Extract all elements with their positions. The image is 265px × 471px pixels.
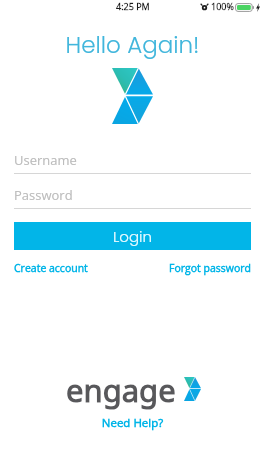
- other: Engage logo: [112, 68, 153, 124]
- button[interactable]: Login: [14, 222, 251, 250]
- button[interactable]: Password: [0, 183, 265, 209]
- staticText: Login: [113, 226, 153, 247]
- other: Charging: [256, 3, 260, 12]
- staticText: Create account: [14, 261, 88, 275]
- staticText: 100%: [211, 0, 234, 12]
- other: Alarm set: [201, 3, 208, 11]
- staticText: Password: [14, 186, 73, 204]
- other: Engage logo: [184, 377, 201, 401]
- staticText: engage: [66, 369, 176, 411]
- button[interactable]: Need Help?: [0, 412, 265, 434]
- staticText: 4:25 PM: [116, 0, 150, 12]
- button[interactable]: Create account: [10, 258, 92, 278]
- staticText: Need Help?: [0, 415, 265, 431]
- staticText: Forgot password: [169, 261, 251, 275]
- button[interactable]: Forgot password: [165, 258, 255, 278]
- other: Battery full: [235, 3, 254, 12]
- button[interactable]: Username: [0, 148, 265, 174]
- staticText: Hello Again!: [0, 29, 265, 61]
- staticText: Username: [14, 151, 77, 169]
